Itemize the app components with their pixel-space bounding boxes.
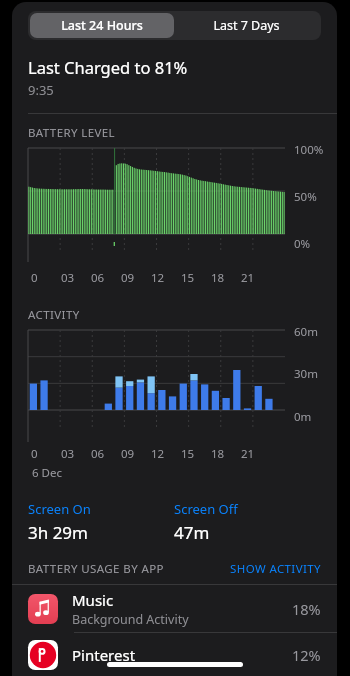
button[interactable]: Music	[12, 585, 337, 632]
button[interactable]: Last 7 Days	[174, 13, 319, 38]
staticText: 30m	[294, 366, 318, 382]
staticText: 15	[181, 446, 195, 462]
staticText: ACTIVITY	[28, 307, 80, 323]
staticText: 06	[91, 270, 105, 286]
staticText: BATTERY LEVEL	[28, 125, 116, 141]
staticText: Last 24 Hours	[61, 17, 143, 34]
staticText: 12	[151, 446, 165, 462]
staticText: Screen On	[28, 500, 91, 518]
staticText: 18	[211, 270, 225, 286]
staticText: 0m	[294, 409, 312, 425]
staticText: 21	[241, 446, 255, 462]
staticText: 18	[211, 446, 225, 462]
staticText: 09	[121, 270, 135, 286]
staticText: 03	[61, 446, 75, 462]
button[interactable]: SHOW ACTIVITY	[230, 561, 321, 577]
staticText: 100%	[294, 142, 324, 158]
staticText: 21	[241, 270, 255, 286]
staticText: Pinterest	[72, 645, 136, 665]
staticText: 03	[61, 270, 75, 286]
staticText: Screen Off	[174, 500, 238, 518]
button[interactable]: Screen On	[28, 500, 174, 544]
staticText: 60m	[294, 324, 318, 340]
staticText: 18%	[292, 599, 321, 619]
staticText: 12%	[292, 645, 321, 665]
staticText: 0%	[294, 236, 311, 252]
button[interactable]: Pinterest	[12, 633, 337, 676]
staticText: 06	[91, 446, 105, 462]
staticText: 0	[31, 270, 38, 286]
staticText: 0	[31, 446, 38, 462]
staticText: SHOW ACTIVITY	[230, 561, 321, 577]
staticText: 6 Dec	[32, 465, 62, 481]
staticText: 9:35	[28, 81, 54, 99]
staticText: BATTERY USAGE BY APP	[28, 561, 164, 577]
button[interactable]: Screen Off	[174, 500, 321, 544]
staticText: 15	[181, 270, 195, 286]
staticText: Last 7 Days	[213, 17, 280, 34]
staticText: Last Charged to 81%	[28, 56, 188, 78]
staticText: 3h 29m	[28, 521, 88, 544]
staticText: 12	[151, 270, 165, 286]
staticText: Music	[72, 590, 114, 610]
staticText: 09	[121, 446, 135, 462]
staticText: 47m	[174, 521, 210, 544]
button[interactable]: Last 24 Hours	[30, 13, 174, 38]
staticText: Background Activity	[72, 611, 189, 628]
staticText: 50%	[294, 189, 317, 205]
